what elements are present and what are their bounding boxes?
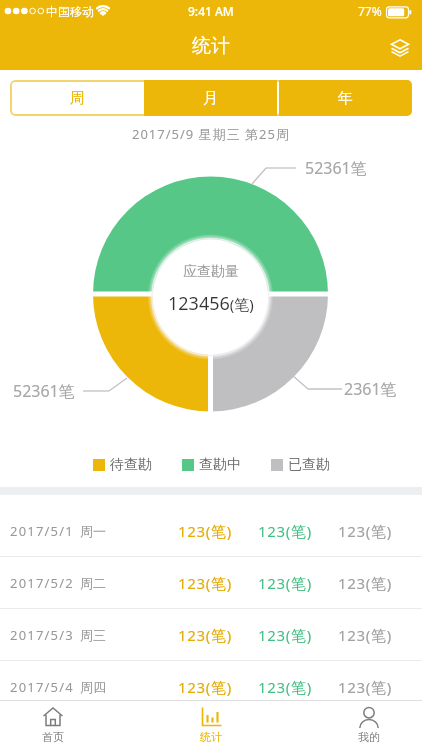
staticText: 统计	[192, 34, 230, 58]
staticText: 123(笔)	[258, 521, 312, 541]
staticText: 123(笔)	[258, 625, 312, 645]
staticText: 123(笔)	[338, 573, 392, 593]
button[interactable]: 2017/5/4	[0, 661, 422, 712]
button[interactable]	[386, 33, 414, 61]
staticText: 查勘中	[199, 456, 241, 474]
staticText: 年	[338, 89, 353, 108]
staticText: 123(笔)	[258, 573, 312, 593]
button[interactable]: 2017/5/1	[0, 505, 422, 556]
staticText: 123(笔)	[338, 521, 392, 541]
button[interactable]: 2017/5/3	[0, 609, 422, 660]
staticText: 9:41 AM	[188, 3, 234, 19]
button[interactable]: 2017/5/2	[0, 557, 422, 608]
staticText: 2361笔	[344, 378, 397, 400]
staticText: 52361笔	[13, 380, 75, 402]
staticText: 中国移动	[46, 4, 94, 19]
button[interactable]: 我的	[329, 701, 409, 750]
button[interactable]: 首页	[13, 701, 93, 750]
button[interactable]: 年	[279, 80, 412, 116]
staticText: 123(笔)	[178, 573, 232, 593]
staticText: 2017/5/2	[10, 574, 74, 592]
staticText: 首页	[42, 730, 64, 744]
staticText: 已查勘	[288, 456, 330, 474]
button[interactable]: 统计	[171, 701, 251, 750]
staticText: 2017/5/4	[10, 678, 74, 696]
staticText: 周一	[80, 523, 106, 539]
staticText: 2017/5/1	[10, 522, 74, 540]
staticText: 周四	[80, 679, 106, 695]
staticText: 77%	[358, 3, 382, 19]
staticText: 我的	[358, 730, 380, 744]
staticText: 统计	[200, 730, 222, 744]
staticText: 应查勘量	[183, 263, 239, 281]
staticText: 月	[203, 89, 218, 108]
staticText: 123(笔)	[258, 677, 312, 697]
staticText: 123(笔)	[178, 521, 232, 541]
staticText: 2017/5/3	[10, 626, 74, 644]
staticText: 待查勘	[110, 456, 152, 474]
staticText: 123(笔)	[338, 677, 392, 697]
button[interactable]: 周	[10, 80, 144, 116]
button[interactable]: 月	[144, 80, 277, 116]
staticText: 123(笔)	[338, 625, 392, 645]
staticText: 周	[70, 89, 85, 108]
staticText: 周三	[80, 627, 106, 643]
staticText: 123456(笔)	[168, 291, 254, 316]
staticText: 2017/5/9 星期三 第25周	[132, 125, 290, 143]
staticText: 周二	[80, 575, 106, 591]
staticText: 52361笔	[305, 157, 367, 179]
staticText: 123(笔)	[178, 625, 232, 645]
staticText: 123(笔)	[178, 677, 232, 697]
